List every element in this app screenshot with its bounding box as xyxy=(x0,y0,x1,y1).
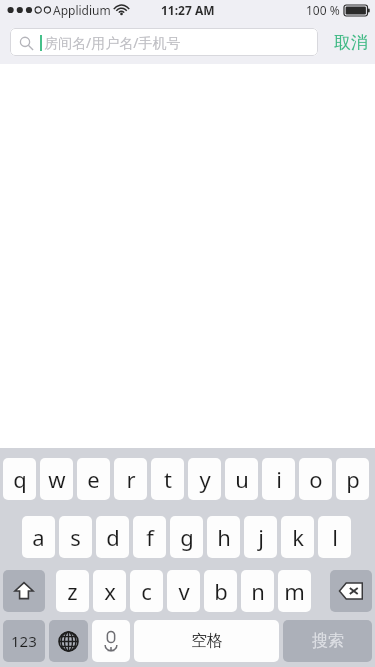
staticText: y xyxy=(199,464,211,494)
button[interactable]: y xyxy=(188,458,221,500)
button[interactable]: m xyxy=(278,570,311,612)
staticText: a xyxy=(32,522,45,552)
staticText: s xyxy=(70,522,81,552)
staticText: o xyxy=(309,464,323,494)
staticText: j xyxy=(258,522,264,552)
staticText: z xyxy=(67,576,78,606)
staticText: 房间名/用户名/手机号 xyxy=(44,33,181,52)
button[interactable]: Change keyboard xyxy=(49,620,88,662)
button[interactable]: b xyxy=(204,570,237,612)
staticText: c xyxy=(141,576,152,606)
staticText: k xyxy=(292,522,304,552)
button[interactable]: c xyxy=(130,570,163,612)
button[interactable]: e xyxy=(77,458,110,500)
button[interactable]: f xyxy=(133,516,166,558)
staticText: e xyxy=(87,464,100,494)
button[interactable]: x xyxy=(93,570,126,612)
button[interactable]: v xyxy=(167,570,200,612)
button[interactable]: a xyxy=(22,516,55,558)
staticText: i xyxy=(276,464,282,494)
staticText: t xyxy=(164,464,172,494)
staticText: l xyxy=(332,522,338,552)
staticText: 100 % xyxy=(306,2,340,18)
staticText: x xyxy=(104,576,116,606)
button[interactable]: u xyxy=(225,458,258,500)
staticText: w xyxy=(48,464,66,494)
button[interactable]: q xyxy=(3,458,36,500)
button[interactable]: 房间名/用户名/手机号 xyxy=(10,28,318,56)
staticText: 空格 xyxy=(191,631,223,651)
staticText: v xyxy=(178,576,190,606)
staticText: 123 xyxy=(11,631,37,651)
staticText: f xyxy=(146,522,154,552)
staticText: n xyxy=(251,576,265,606)
button[interactable]: z xyxy=(56,570,89,612)
staticText: q xyxy=(13,464,27,494)
button[interactable]: g xyxy=(170,516,203,558)
button[interactable]: Numbers xyxy=(3,620,45,662)
button[interactable]: p xyxy=(336,458,369,500)
button[interactable]: j xyxy=(244,516,277,558)
staticText: 取消 xyxy=(334,32,368,53)
button[interactable]: 取消 xyxy=(326,20,375,64)
button[interactable]: Shift xyxy=(3,570,45,612)
staticText: h xyxy=(217,522,231,552)
button[interactable]: h xyxy=(207,516,240,558)
button[interactable]: d xyxy=(96,516,129,558)
staticText: p xyxy=(346,464,360,494)
staticText: 11:27 AM xyxy=(161,2,215,18)
button[interactable]: s xyxy=(59,516,92,558)
staticText: g xyxy=(180,522,194,552)
button[interactable]: n xyxy=(241,570,274,612)
button[interactable]: Search xyxy=(283,620,372,662)
staticText: m xyxy=(284,576,305,606)
button[interactable]: l xyxy=(318,516,351,558)
button[interactable]: k xyxy=(281,516,314,558)
button[interactable]: Backspace xyxy=(330,570,372,612)
staticText: r xyxy=(126,464,136,494)
staticText: u xyxy=(235,464,249,494)
button[interactable]: Space xyxy=(134,620,279,662)
button[interactable]: w xyxy=(40,458,73,500)
staticText: b xyxy=(214,576,228,606)
staticText: 搜索 xyxy=(312,631,344,651)
staticText: d xyxy=(106,522,120,552)
button[interactable]: Dictation xyxy=(92,620,130,662)
button[interactable]: t xyxy=(151,458,184,500)
staticText: Applidium xyxy=(53,2,111,18)
button[interactable]: i xyxy=(262,458,295,500)
button[interactable]: r xyxy=(114,458,147,500)
button[interactable]: o xyxy=(299,458,332,500)
